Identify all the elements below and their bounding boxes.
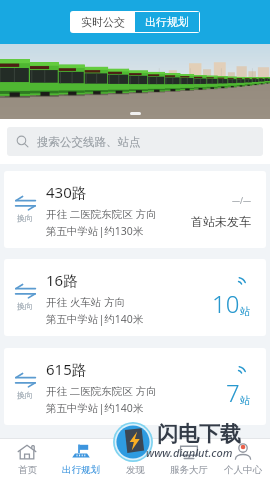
button[interactable]: 发现 — [108, 439, 162, 480]
staticText: 站 — [240, 305, 251, 318]
button[interactable]: 出行规划 — [54, 439, 108, 480]
button[interactable]: 换向 switch direction — [4, 348, 266, 425]
button[interactable]: 换向 switch direction — [4, 348, 46, 425]
button[interactable]: 出行规划 — [135, 12, 199, 32]
staticText: 出行规划 — [145, 15, 189, 29]
button[interactable]: 换向 switch direction — [4, 171, 266, 248]
staticText: 换向 — [17, 213, 33, 223]
button[interactable]: 换向 switch direction — [4, 259, 266, 336]
staticText: 出行规划 — [62, 464, 100, 476]
staticText: 第五中学站|约140米 — [46, 312, 144, 326]
staticText: 16路 — [46, 270, 79, 290]
staticText: 615路 — [46, 359, 87, 379]
staticText: 10 — [212, 287, 240, 320]
staticText: 闪电下载 — [157, 421, 241, 447]
button[interactable]: 换向 switch direction — [4, 171, 46, 248]
staticText: 第五中学站|约140米 — [46, 401, 144, 415]
button[interactable]: 个人中心 — [216, 439, 270, 480]
staticText: 430路 — [46, 182, 87, 202]
staticText: 开往 火车站 方向 — [46, 295, 125, 309]
staticText: 发现 — [126, 464, 145, 476]
button[interactable]: 搜索公交线路、站点 — [7, 127, 263, 156]
staticText: 开往 二医院东院区 方向 — [46, 384, 157, 398]
staticText: 开往 二医院东院区 方向 — [46, 207, 157, 221]
staticText: 首页 — [18, 464, 37, 476]
staticText: 个人中心 — [224, 464, 262, 476]
staticText: —/— — [232, 195, 251, 206]
staticText: 实时公交 — [81, 15, 125, 29]
staticText: 换向 — [17, 301, 33, 311]
staticText: 站 — [240, 394, 251, 407]
button[interactable]: 服务大厅 — [162, 439, 216, 480]
button[interactable]: 换向 switch direction — [4, 259, 46, 336]
staticText: 首站未发车 — [191, 214, 251, 229]
staticText: 第五中学站|约130米 — [46, 224, 144, 238]
staticText: 换向 — [17, 390, 33, 400]
staticText: 搜索公交线路、站点 — [37, 135, 141, 149]
button[interactable]: 首页 — [0, 439, 54, 480]
staticText: www.dianlut.com — [146, 445, 233, 460]
staticText: 7 — [226, 376, 240, 409]
button[interactable]: 实时公交 — [71, 12, 135, 32]
staticText: 服务大厅 — [170, 464, 208, 476]
